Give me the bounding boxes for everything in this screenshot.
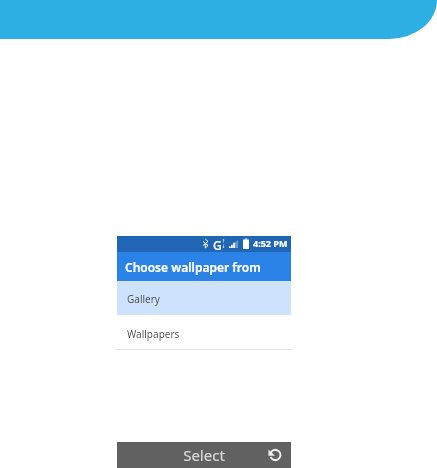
button[interactable]: Restore default wallpaper (268, 442, 282, 468)
button[interactable]: Select (117, 442, 291, 468)
staticText: Gallery (127, 292, 160, 306)
staticText: Choose wallpaper from (125, 259, 261, 275)
staticText: Wallpapers (127, 327, 180, 341)
staticText: G (213, 237, 222, 253)
staticText: Select (183, 445, 225, 465)
button[interactable]: Gallery (117, 281, 291, 315)
button[interactable]: Wallpapers (117, 315, 291, 349)
staticText: 4:52 PM (253, 237, 288, 249)
